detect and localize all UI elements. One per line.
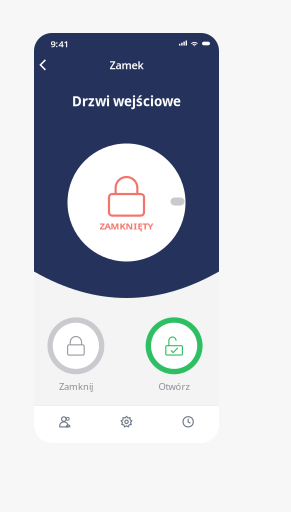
staticText: 9:41 (50, 37, 68, 50)
staticText: Zamek (109, 58, 143, 72)
button[interactable]: Back (31, 51, 55, 79)
staticText: ZAMKNIĘTY (99, 220, 153, 232)
button[interactable]: Settings (96, 406, 157, 438)
button[interactable]: Otwórz (132, 317, 216, 392)
staticText: Otwórz (159, 380, 190, 393)
button[interactable]: Zamknij (34, 317, 118, 392)
button[interactable]: History (157, 406, 219, 438)
button[interactable]: Users (34, 406, 96, 438)
staticText: Drzwi wejściowe (72, 92, 181, 110)
staticText: Zamknij (59, 380, 93, 393)
